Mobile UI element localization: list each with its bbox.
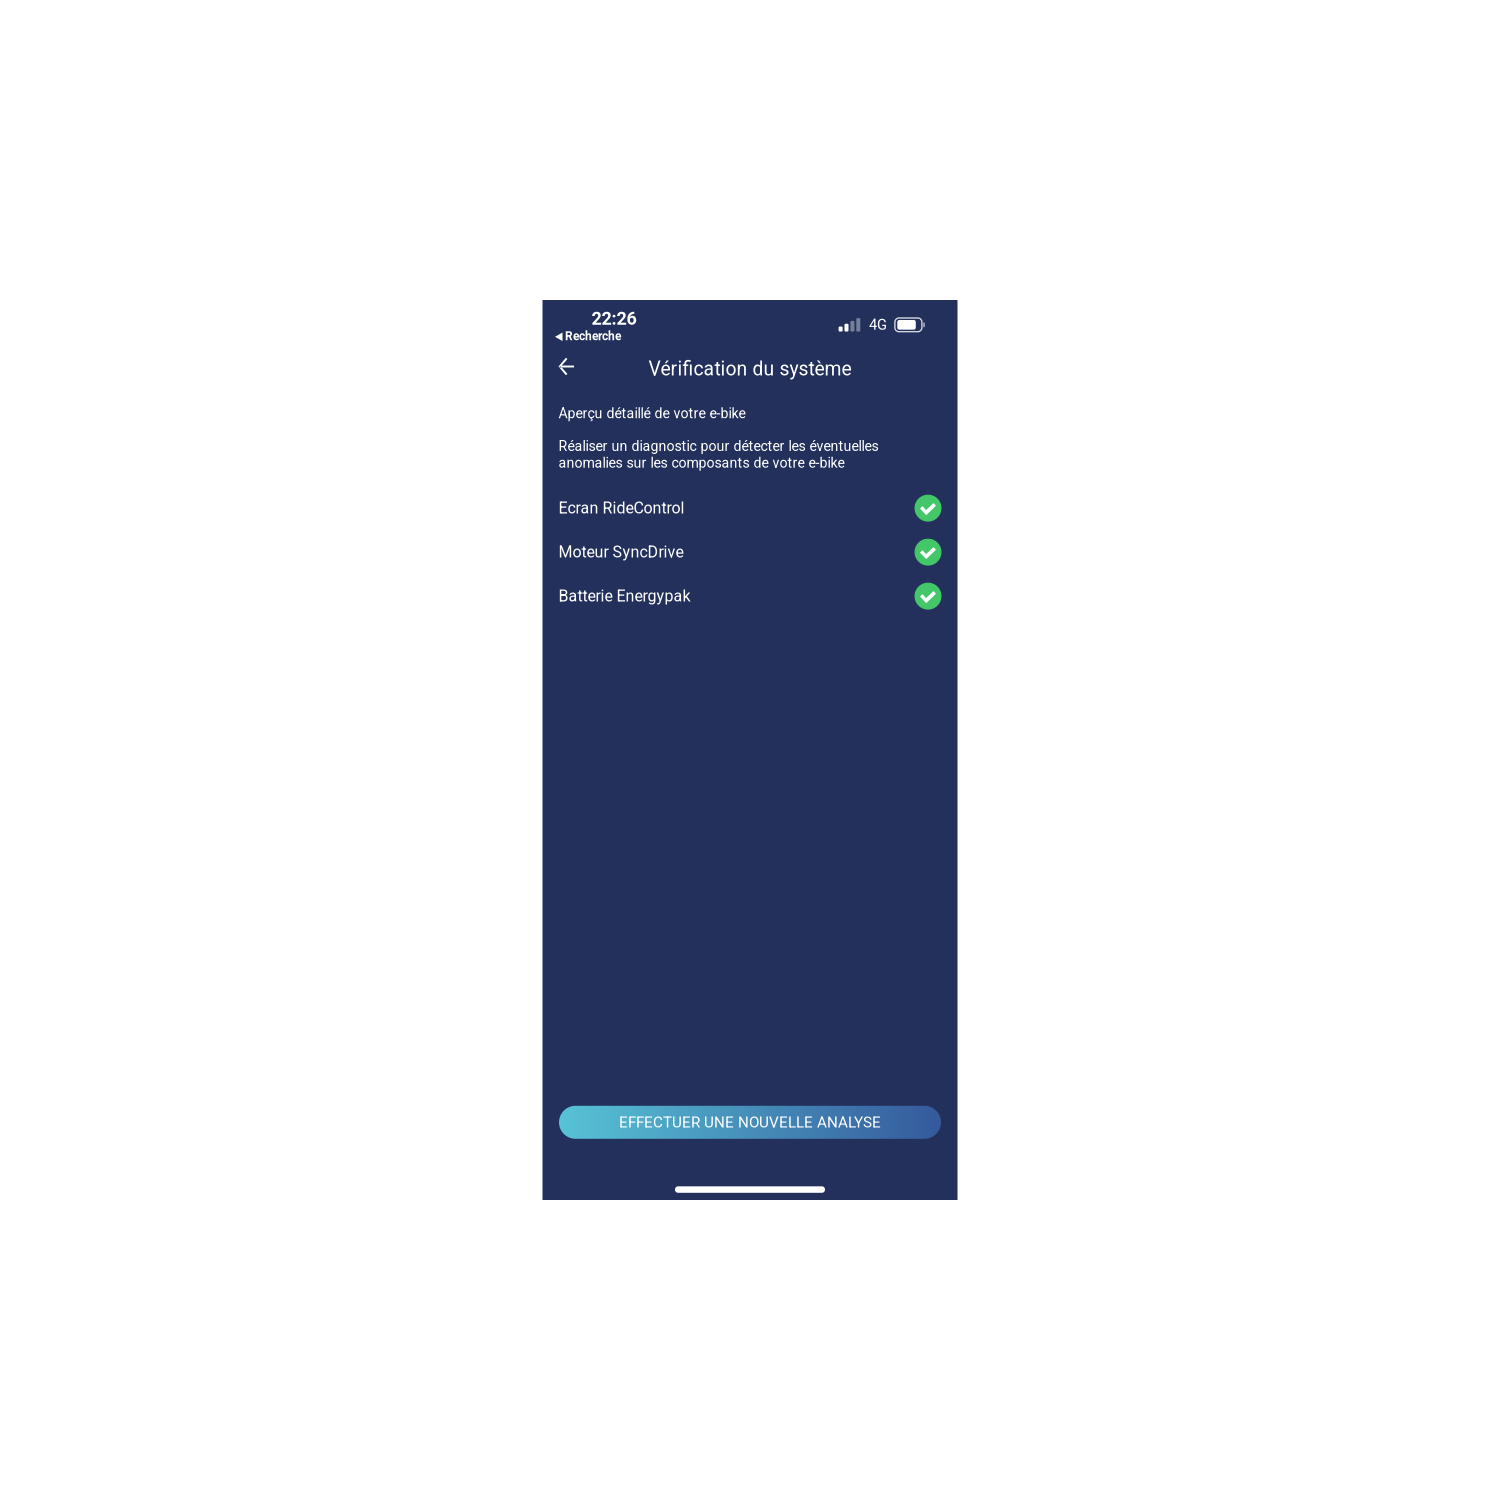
staticText: Réaliser un diagnostic pour détecter les… <box>558 438 878 471</box>
staticText: Batterie Energypak <box>558 587 690 605</box>
staticText: Recherche <box>565 329 621 343</box>
staticText: Moteur SyncDrive <box>558 543 683 561</box>
staticText: Aperçu détaillé de votre e-bike <box>558 405 745 422</box>
button[interactable]: Ecran RideControl <box>558 486 941 530</box>
staticText: 22:26 <box>591 308 636 329</box>
staticText: EFFECTUER UNE NOUVELLE ANALYSE <box>619 1113 881 1131</box>
button[interactable]: Moteur SyncDrive <box>558 530 941 574</box>
staticText: 4G <box>869 316 887 333</box>
button[interactable]: EFFECTUER UNE NOUVELLE ANALYSE <box>559 1106 941 1139</box>
button[interactable]: Retour <box>542 352 586 386</box>
button[interactable]: Batterie Energypak <box>558 574 941 618</box>
staticText: Vérification du système <box>648 358 851 380</box>
staticText: Ecran RideControl <box>558 499 684 517</box>
